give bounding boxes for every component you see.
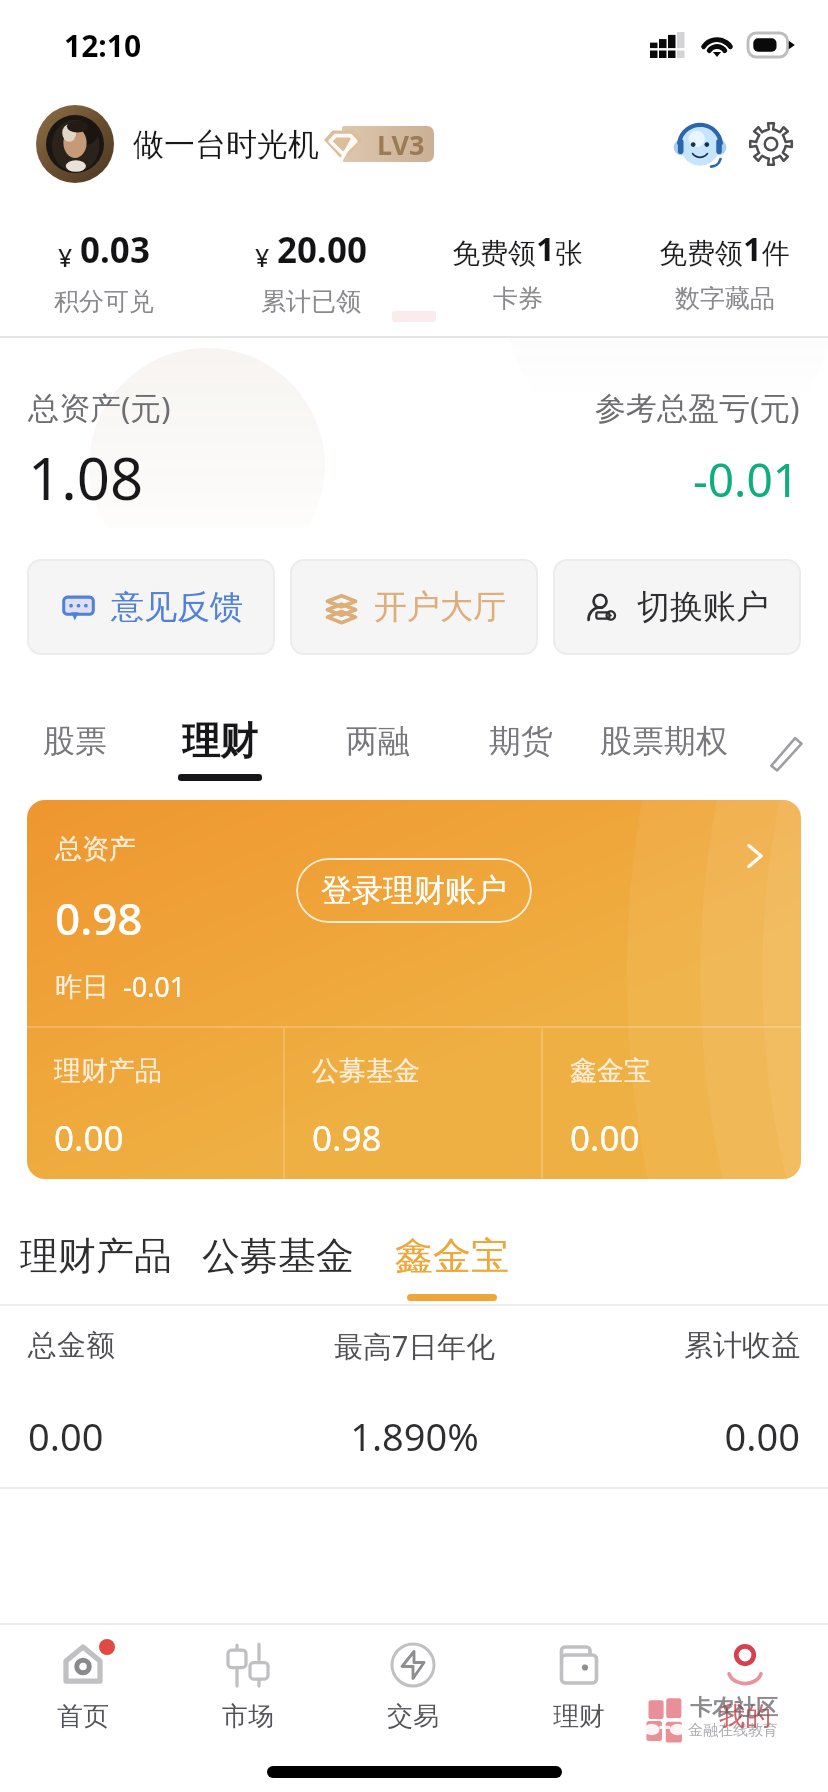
button[interactable]: 公募基金 — [285, 1028, 543, 1179]
staticText: 参考总盈亏(元) — [595, 386, 800, 428]
staticText: 切换账户 — [637, 586, 769, 628]
button[interactable]: Level 3 — [321, 124, 434, 164]
staticText: 免费领 — [452, 236, 536, 271]
button[interactable]: 登录理财账户 — [296, 858, 532, 923]
staticText: 理财 — [553, 1700, 605, 1733]
staticText: 20.00 — [277, 226, 367, 274]
staticText: 卡券 — [493, 283, 543, 314]
button[interactable]: 两融 — [346, 725, 410, 781]
staticText: 两融 — [346, 721, 410, 761]
button[interactable]: 切换账户 — [553, 559, 801, 655]
button[interactable]: Edit tabs — [762, 729, 808, 775]
staticText: 理财 — [182, 717, 258, 765]
staticText: 件 — [762, 236, 790, 271]
staticText: 首页 — [57, 1700, 109, 1733]
button[interactable]: 股票 — [43, 725, 107, 781]
staticText: 股票 — [43, 721, 107, 761]
button[interactable]: Profile avatar — [36, 105, 114, 183]
button[interactable]: Settings — [746, 119, 796, 169]
staticText: 登录理财账户 — [321, 871, 507, 910]
staticText: 鑫金宝 — [570, 1054, 651, 1088]
staticText: 理财产品 — [20, 1232, 172, 1280]
staticText: -0.01 — [123, 968, 186, 1005]
staticText: 做一台时光机 — [133, 125, 319, 164]
staticText: ¥ — [58, 240, 73, 274]
staticText: ¥ — [255, 240, 270, 274]
staticText: 市场 — [222, 1700, 274, 1733]
button[interactable]: ¥ — [207, 200, 414, 336]
staticText: 0.00 — [570, 1114, 640, 1162]
staticText: 昨日 — [55, 970, 109, 1004]
staticText: 0.00 — [28, 1410, 286, 1462]
staticText: 总资产(元) — [28, 386, 171, 428]
staticText: 鑫金宝 — [395, 1232, 509, 1280]
staticText: 0.00 — [54, 1114, 124, 1162]
staticText: 公募基金 — [312, 1054, 420, 1088]
staticText: 总金额 — [28, 1327, 286, 1364]
staticText: 1.08 — [28, 438, 144, 517]
button[interactable]: 理财产品 — [27, 1028, 285, 1179]
staticText: 金融在线教育 — [688, 1721, 778, 1740]
staticText: 1 — [536, 226, 555, 271]
staticText: -0.01 — [693, 448, 800, 511]
staticText: 最高7日年化 — [286, 1326, 543, 1366]
staticText: 累计收益 — [543, 1327, 800, 1364]
staticText: 0.03 — [80, 226, 150, 274]
staticText: 免费领 — [659, 236, 743, 271]
button[interactable]: 股票期权 — [600, 725, 728, 781]
staticText: 理财产品 — [54, 1054, 162, 1088]
staticText: 张 — [555, 236, 583, 271]
staticText: 1.890% — [286, 1410, 543, 1462]
staticText: 0.98 — [312, 1114, 382, 1162]
staticText: 我的 — [719, 1700, 771, 1733]
button[interactable]: 鑫金宝 — [543, 1028, 801, 1179]
button[interactable]: 免费领 — [621, 200, 828, 336]
button[interactable]: 理财 — [496, 1625, 662, 1747]
button[interactable]: 首页 — [0, 1625, 165, 1747]
button[interactable]: 0.00 — [28, 1385, 800, 1487]
staticText: 交易 — [387, 1700, 439, 1733]
staticText: 股票期权 — [600, 721, 728, 761]
button[interactable]: Customer service — [672, 116, 728, 172]
button[interactable]: 鑫金宝 — [395, 1232, 509, 1304]
staticText: LV3 — [377, 126, 425, 163]
button[interactable]: 公募基金 — [202, 1232, 354, 1304]
button[interactable]: 交易 — [330, 1625, 496, 1747]
staticText: 公募基金 — [202, 1232, 354, 1280]
staticText: 数字藏品 — [675, 283, 775, 314]
staticText: 0.98 — [55, 888, 143, 948]
button[interactable]: 理财产品 — [20, 1232, 172, 1304]
staticText: 期货 — [489, 721, 553, 761]
staticText: 累计已领 — [261, 286, 361, 317]
staticText: 开户大厅 — [374, 586, 506, 628]
button[interactable]: ¥ — [0, 200, 207, 336]
button[interactable]: View details — [733, 834, 777, 878]
button[interactable]: 理财 — [178, 717, 262, 781]
staticText: 1 — [743, 226, 762, 271]
staticText: 积分可兑 — [54, 286, 154, 317]
button[interactable]: 免费领 — [414, 200, 621, 336]
button[interactable]: 我的 — [662, 1625, 828, 1747]
staticText: 总资产 — [55, 832, 136, 866]
staticText: 卡农社区 — [690, 1694, 778, 1722]
staticText: 12:10 — [64, 25, 142, 66]
button[interactable]: 意见反馈 — [27, 559, 275, 655]
button[interactable]: 总资产 — [27, 800, 801, 1179]
staticText: 意见反馈 — [111, 586, 243, 628]
button[interactable]: 开户大厅 — [290, 559, 538, 655]
staticText: 0.00 — [543, 1410, 800, 1462]
button[interactable]: 市场 — [165, 1625, 330, 1747]
button[interactable]: 期货 — [489, 725, 553, 781]
